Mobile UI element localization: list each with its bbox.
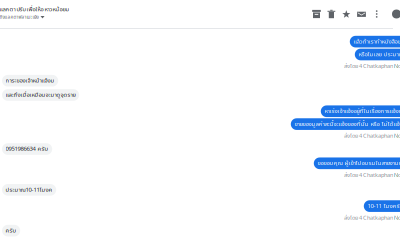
- staticText: และถึงเมื่อเหมือนจะมาดูจุดราย: [6, 91, 76, 99]
- staticText: ส่งโดย 4 Chatkaphan Noisena: [344, 132, 400, 140]
- button[interactable]: Star: [342, 9, 351, 18]
- button[interactable]: และถึงเมื่อเหมือนจะมาดูจุดราย: [2, 89, 79, 101]
- button[interactable]: More options: [372, 9, 381, 18]
- button[interactable]: ขอขอบคุณ ผู้เข้าไปอบรมในสายงานการจ: [314, 157, 400, 169]
- staticText: ส่งโดย 4 Chatkaphan Noisena: [344, 62, 400, 71]
- staticText: 0951986634 ครับ: [6, 145, 49, 153]
- staticText: 10-11 โมงครับวัน: [367, 202, 400, 211]
- button[interactable]: 10-11 โมงครับวัน: [364, 200, 400, 212]
- staticText: ประมาณ10-11โมงค: [6, 185, 53, 194]
- button[interactable]: ขายของมูลค่าสะนี้จะแจ้งของที่นั้น หรือ ไ…: [291, 118, 400, 130]
- staticText: ขายของมูลค่าสะนี้จะแจ้งของที่นั้น หรือ ไ…: [294, 120, 400, 129]
- button[interactable]: Mark as unread: [357, 9, 366, 18]
- button[interactable]: ครับ: [2, 225, 20, 236]
- staticText: ขอขอบคุณ ผู้เข้าไปอบรมในสายงานการจ: [317, 159, 400, 168]
- staticText: หาเร่งเจ้าแจ้งอยู่ที่ในเรื่องการแจ้งขอแล: [324, 107, 400, 116]
- staticText: ส่งโดย 4 Chatkaphan Noisena: [344, 214, 400, 222]
- button[interactable]: ประมาณ10-11โมงค: [2, 184, 56, 196]
- staticText: ภาระของเจ้าหน้าแจ้งม: [6, 76, 55, 85]
- staticText: ส่งโดย 4 Chatkaphan Noisena: [344, 171, 400, 179]
- staticText: ถึงแลคตาฟลาเมะแจ้ง: [0, 14, 38, 21]
- button[interactable]: หาเร่งเจ้าแจ้งอยู่ที่ในเรื่องการแจ้งขอแล: [321, 105, 400, 117]
- staticText: แลคตา ปรับ เพื่อให้อ หาวหน้อยม: [0, 5, 69, 14]
- button[interactable]: Account: [392, 9, 400, 18]
- button[interactable]: Archive: [312, 9, 321, 18]
- staticText: หรือไมเลย ประมาณตร: [358, 50, 400, 59]
- staticText: ครับ: [6, 226, 17, 235]
- staticText: แล้วถ้าเราทำหนังสือขอสมั: [353, 37, 400, 46]
- button[interactable]: Delete: [327, 9, 335, 18]
- button[interactable]: แล้วถ้าเราทำหนังสือขอสมั: [350, 36, 400, 47]
- button[interactable]: ภาระของเจ้าหน้าแจ้งม: [2, 75, 58, 87]
- button[interactable]: หรือไมเลย ประมาณตร: [355, 49, 400, 60]
- button[interactable]: 0951986634 ครับ: [2, 143, 52, 155]
